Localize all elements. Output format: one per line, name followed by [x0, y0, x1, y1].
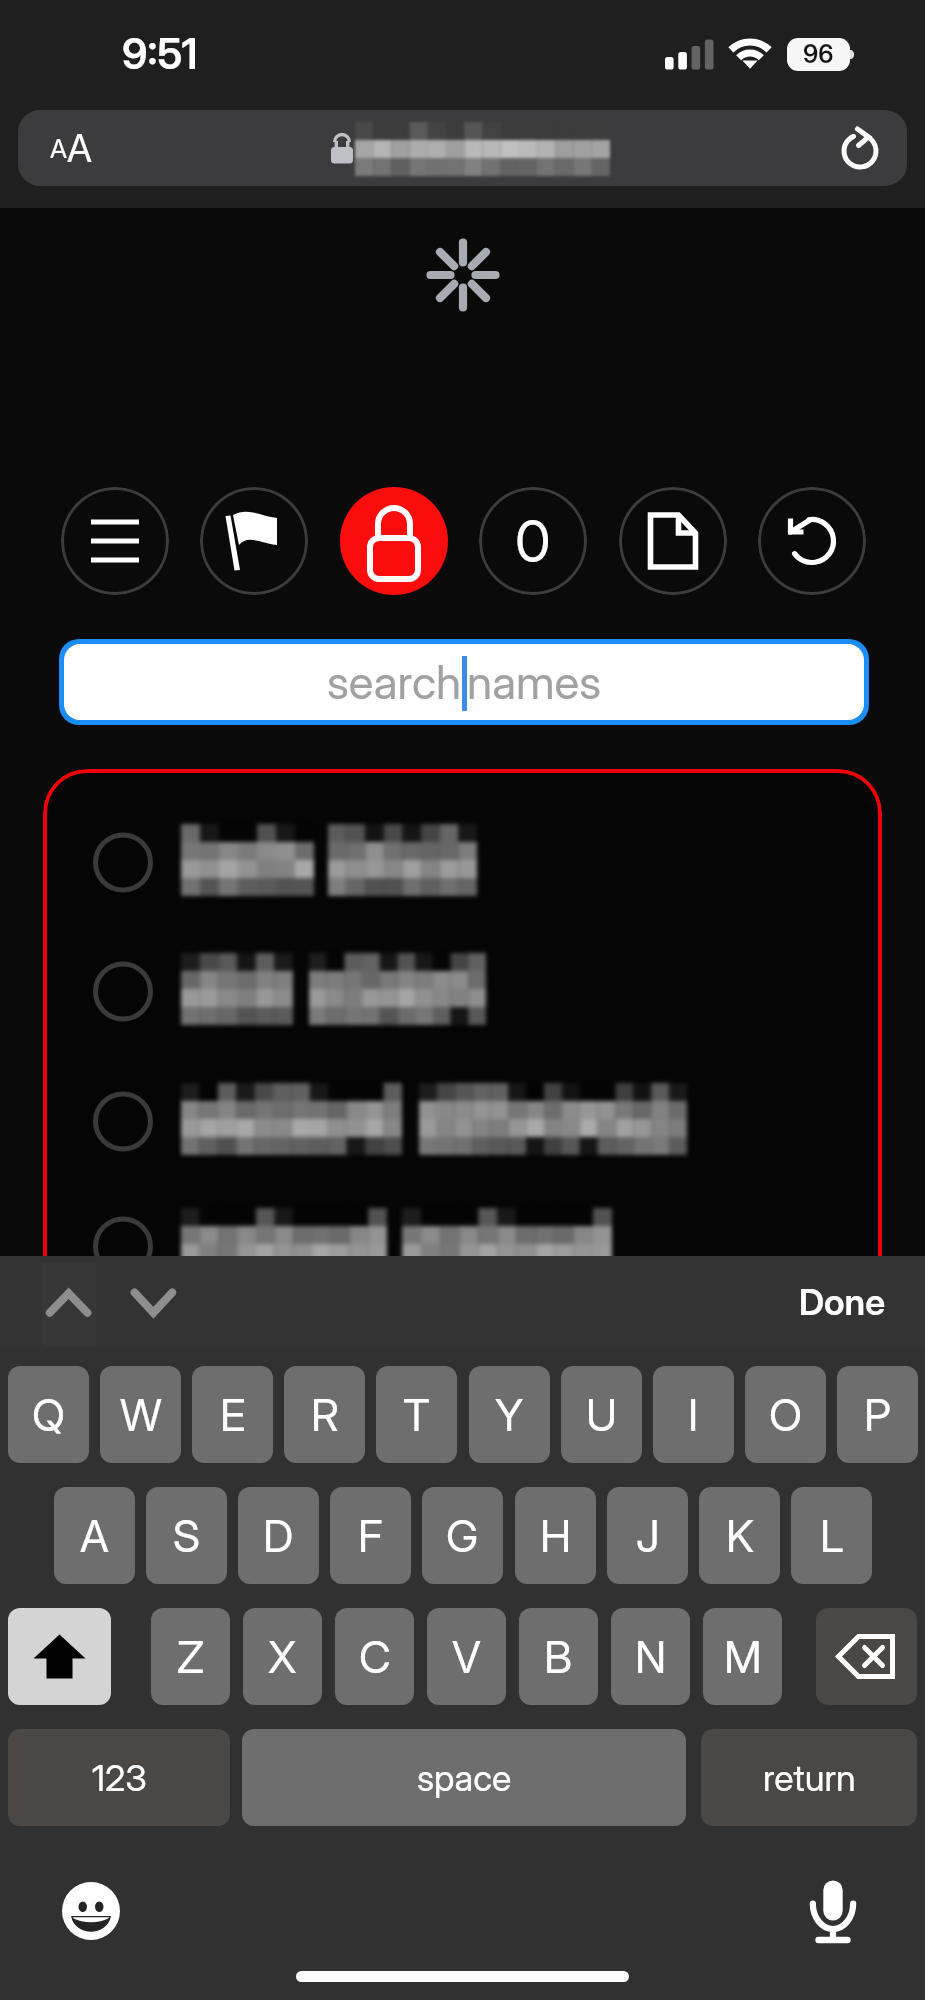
- button[interactable]: H: [515, 1487, 596, 1584]
- button[interactable]: 0: [479, 487, 587, 595]
- staticText: C: [359, 1630, 391, 1683]
- staticText: X: [268, 1630, 297, 1683]
- button[interactable]: Backspace: [816, 1608, 917, 1705]
- other: Page settings: [50, 110, 92, 186]
- staticText: D: [263, 1509, 294, 1562]
- button[interactable]: [43, 798, 882, 927]
- staticText: K: [726, 1509, 754, 1562]
- button[interactable]: X: [243, 1608, 322, 1705]
- button[interactable]: [43, 1182, 882, 1311]
- staticText: names: [467, 654, 602, 710]
- staticText: M: [724, 1630, 762, 1683]
- button[interactable]: V: [427, 1608, 506, 1705]
- button[interactable]: M: [703, 1608, 782, 1705]
- button[interactable]: O: [745, 1366, 826, 1463]
- button[interactable]: Lock: [340, 487, 448, 595]
- staticText: Y: [495, 1388, 524, 1441]
- staticText: Q: [32, 1388, 65, 1441]
- button[interactable]: Emoji keyboard: [58, 1878, 124, 1944]
- button[interactable]: J: [607, 1487, 688, 1584]
- staticText: V: [452, 1630, 481, 1683]
- staticText: J: [636, 1509, 660, 1562]
- staticText: 96: [803, 39, 834, 69]
- button[interactable]: Menu: [61, 487, 169, 595]
- button[interactable]: Undo: [758, 487, 866, 595]
- staticText: Done: [799, 1280, 886, 1324]
- button[interactable]: [43, 1057, 882, 1186]
- button[interactable]: W: [100, 1366, 181, 1463]
- button[interactable]: Shift: [8, 1608, 111, 1705]
- button[interactable]: Done: [786, 1264, 898, 1340]
- staticText: B: [544, 1630, 573, 1683]
- button[interactable]: [43, 927, 882, 1056]
- staticText: I: [688, 1388, 699, 1441]
- button[interactable]: Next field: [128, 1265, 180, 1346]
- staticText: A: [80, 1509, 109, 1562]
- button[interactable]: Dictation: [808, 1856, 858, 1948]
- button[interactable]: Flag: [200, 487, 308, 595]
- button[interactable]: P: [837, 1366, 918, 1463]
- button[interactable]: B: [519, 1608, 598, 1705]
- staticText: 0: [515, 506, 551, 576]
- staticText: 123: [92, 1756, 147, 1800]
- button[interactable]: space: [242, 1729, 686, 1826]
- staticText: N: [635, 1630, 667, 1683]
- staticText: P: [864, 1388, 891, 1441]
- button[interactable]: N: [611, 1608, 690, 1705]
- button[interactable]: D: [238, 1487, 319, 1584]
- staticText: F: [358, 1509, 383, 1562]
- button[interactable]: Previous field: [42, 1263, 96, 1346]
- staticText: W: [120, 1388, 162, 1441]
- staticText: H: [540, 1509, 572, 1562]
- button[interactable]: F: [330, 1487, 411, 1584]
- staticText: T: [403, 1388, 430, 1441]
- button[interactable]: T: [376, 1366, 457, 1463]
- button[interactable]: L: [791, 1487, 872, 1584]
- button[interactable]: Y: [469, 1366, 550, 1463]
- button[interactable]: G: [422, 1487, 503, 1584]
- button[interactable]: Reload page: [820, 113, 900, 183]
- staticText: space: [417, 1756, 512, 1800]
- staticText: 9:51: [122, 28, 198, 79]
- button[interactable]: E: [192, 1366, 273, 1463]
- staticText: R: [311, 1388, 339, 1441]
- button[interactable]: K: [699, 1487, 780, 1584]
- staticText: A: [50, 133, 67, 164]
- button[interactable]: Q: [8, 1366, 89, 1463]
- staticText: G: [446, 1509, 479, 1562]
- button[interactable]: U: [561, 1366, 642, 1463]
- button[interactable]: search: [64, 644, 864, 720]
- staticText: U: [586, 1388, 617, 1441]
- button[interactable]: Document: [619, 487, 727, 595]
- staticText: O: [769, 1388, 802, 1441]
- button[interactable]: C: [335, 1608, 414, 1705]
- button[interactable]: return: [701, 1729, 917, 1826]
- button[interactable]: I: [653, 1366, 734, 1463]
- staticText: search: [327, 654, 462, 710]
- staticText: A: [67, 125, 92, 171]
- staticText: return: [763, 1756, 856, 1800]
- staticText: L: [820, 1509, 844, 1562]
- staticText: E: [220, 1388, 246, 1441]
- staticText: S: [173, 1509, 201, 1562]
- button[interactable]: S: [146, 1487, 227, 1584]
- button[interactable]: R: [284, 1366, 365, 1463]
- button[interactable]: Page settings: [18, 110, 907, 186]
- staticText: Z: [177, 1630, 204, 1683]
- button[interactable]: Z: [151, 1608, 230, 1705]
- button[interactable]: A: [54, 1487, 135, 1584]
- button[interactable]: 123: [8, 1729, 230, 1826]
